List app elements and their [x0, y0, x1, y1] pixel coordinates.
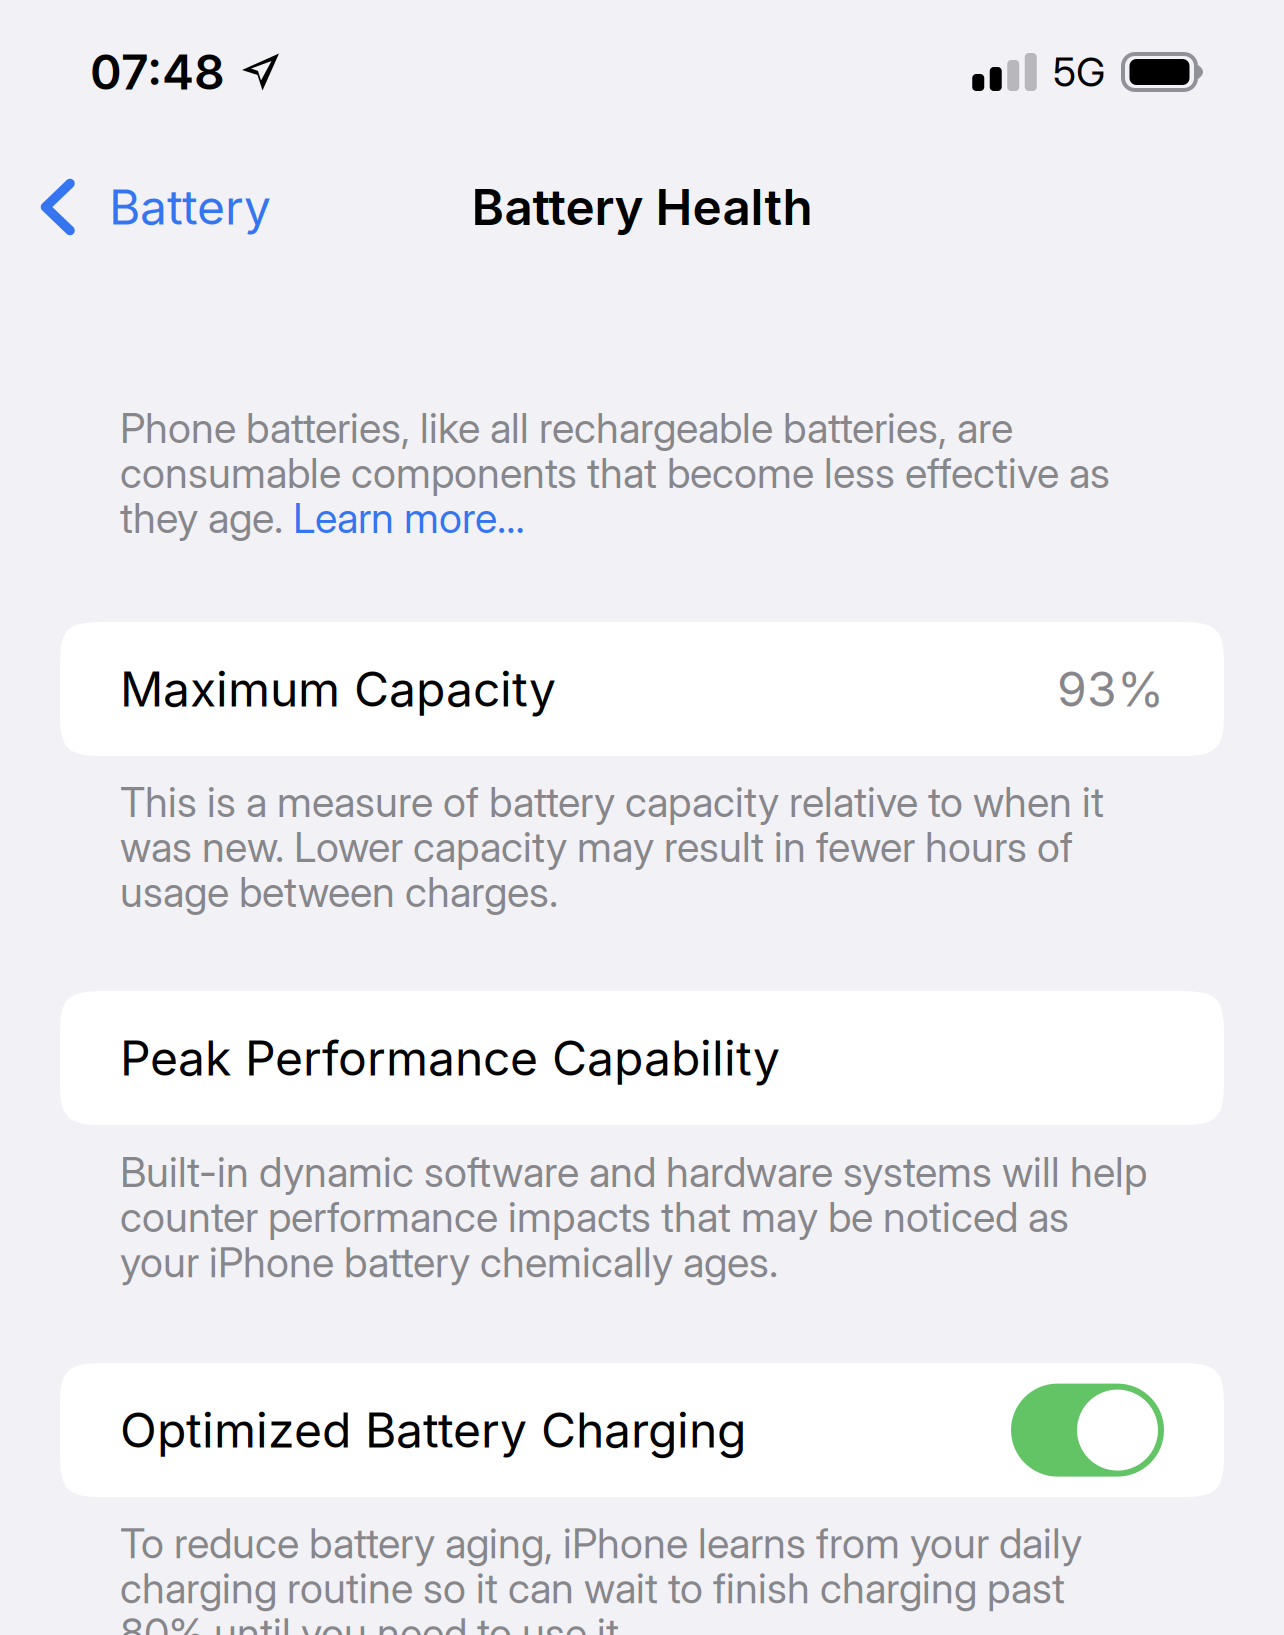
staticText: 5G — [1053, 48, 1105, 96]
staticText: Battery Health — [471, 177, 812, 237]
button[interactable]: Maximum Capacity — [0, 622, 1284, 756]
button[interactable]: Battery — [0, 176, 295, 238]
staticText: Maximum Capacity — [120, 660, 556, 718]
staticText: This is a measure of battery capacity re… — [120, 777, 1104, 917]
staticText: To reduce battery aging, iPhone learns f… — [120, 1518, 1082, 1635]
staticText: Optimized Battery Charging — [120, 1401, 746, 1459]
button[interactable]: Optimized Battery Charging, on — [1011, 1384, 1164, 1477]
button[interactable]: Optimized Battery Charging — [0, 1363, 1284, 1497]
button[interactable]: Phone batteries, like all rechargeable b… — [0, 403, 1284, 543]
staticText: 07:48 — [90, 43, 225, 101]
staticText: Phone batteries, like all rechargeable b… — [120, 403, 1110, 543]
staticText: Peak Performance Capability — [120, 1029, 780, 1087]
staticText: Built-in dynamic software and hardware s… — [120, 1147, 1147, 1287]
staticText: 93% — [1057, 660, 1164, 718]
button[interactable]: Peak Performance Capability — [0, 991, 1284, 1125]
staticText: Battery — [109, 178, 271, 236]
